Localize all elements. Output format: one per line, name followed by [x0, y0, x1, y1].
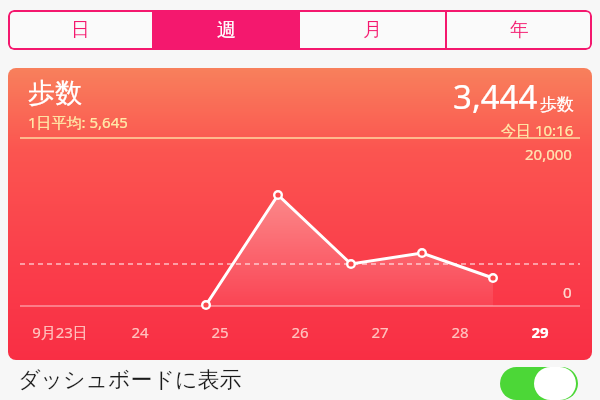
- staticText: 今日 10:16: [501, 120, 574, 140]
- staticText: 歩数: [540, 94, 574, 115]
- staticText: 20,000: [525, 144, 572, 164]
- staticText: 日: [71, 18, 90, 42]
- staticText: 28: [451, 322, 469, 342]
- staticText: 歩数: [28, 76, 82, 110]
- staticText: 27: [371, 322, 389, 342]
- staticText: 26: [291, 322, 309, 342]
- staticText: 1日平均: 5,645: [28, 112, 128, 132]
- button[interactable]: ダッシュボードに表示 スイッチ: [500, 367, 578, 400]
- button[interactable]: 日: [8, 10, 152, 50]
- button[interactable]: 月: [300, 10, 445, 50]
- staticText: 年: [510, 18, 529, 42]
- button[interactable]: 年: [447, 10, 592, 50]
- staticText: 9月23日: [32, 322, 88, 342]
- staticText: 3,444: [453, 74, 538, 119]
- staticText: 29: [531, 322, 549, 342]
- staticText: 25: [211, 322, 229, 342]
- staticText: 週: [217, 18, 236, 42]
- button[interactable]: 週: [154, 10, 298, 50]
- staticText: 0: [563, 282, 572, 302]
- button[interactable]: 歩数: [8, 68, 592, 360]
- staticText: 24: [131, 322, 149, 342]
- staticText: 月: [363, 18, 382, 42]
- staticText: ダッシュボードに表示: [18, 366, 242, 394]
